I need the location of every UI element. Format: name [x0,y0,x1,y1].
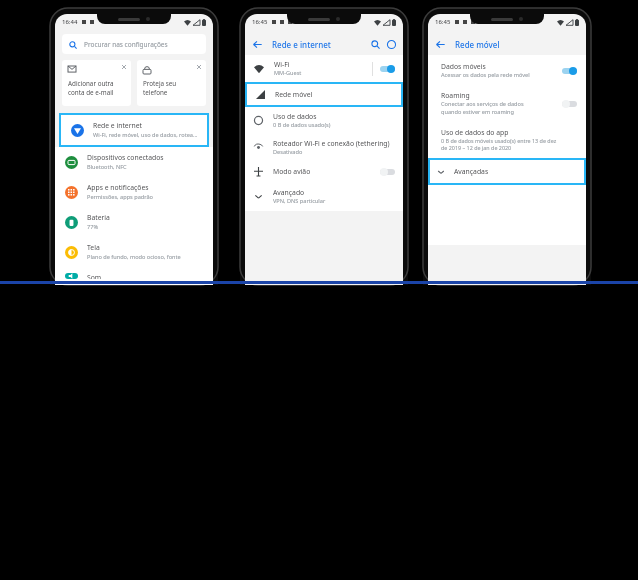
staticText: Dados móveis [441,62,486,71]
button[interactable]: Dispensar [121,64,127,70]
staticText: Plano de fundo, modo ocioso, fonte [87,253,181,261]
button[interactable]: Dispositivos conectados [55,147,213,177]
staticText: Rede móvel [275,90,313,99]
button[interactable]: Roteador Wi-Fi e conexão (tethering) [245,134,403,161]
staticText: Uso de dados [273,112,317,121]
staticText: Avançado [273,188,305,197]
button[interactable]: Ajuda [387,40,396,49]
button[interactable]: Proteja seu telefone [137,60,206,106]
button[interactable]: Dados móveis [428,55,586,85]
staticText: Som [87,273,102,279]
button[interactable]: Pesquisar [371,40,380,49]
staticText: Wi-Fi, rede móvel, uso de dados, roteado… [93,131,199,139]
staticText: Uso de dados do app [441,128,509,137]
button[interactable]: Rede e internet [61,115,207,145]
staticText: Proteja seu telefone [143,79,201,97]
staticText: Bateria [87,213,110,222]
staticText: Roaming [441,91,470,100]
button[interactable]: Tela [55,237,213,267]
button[interactable]: Avançado [245,182,403,211]
button[interactable]: Roaming [428,85,586,122]
button[interactable]: Rede móvel [247,84,401,105]
staticText: Adicionar outra conta de e-mail [68,79,114,97]
staticText: Dispositivos conectados [87,153,164,162]
staticText: 0 B de dados usado(s) [273,121,331,129]
button[interactable]: Wi-Fi [245,55,403,82]
staticText: MM-Guest [274,69,302,77]
staticText: 0 B de dados móveis usado(s) entre 13 de… [441,137,557,144]
staticText: Rede e internet [93,121,142,130]
staticText: quando estiver em roaming [441,108,514,116]
staticText: Modo avião [273,167,380,176]
staticText: 77% [87,223,99,231]
button[interactable]: Uso de dados do app [428,122,586,158]
staticText: Procurar nas configurações [84,40,168,49]
staticText: Rede móvel [455,39,500,50]
button[interactable]: Uso de dados [245,107,403,134]
staticText: Apps e notificações [87,183,149,192]
staticText: Permissões, apps padrão [87,193,153,201]
staticText: Wi-Fi [274,60,290,69]
button[interactable]: Modo avião [245,161,403,182]
staticText: Rede e internet [272,39,331,50]
staticText: Desativado [273,148,303,156]
staticText: Bluetooth, NFC [87,163,127,171]
button[interactable]: Adicionar outra conta de e-mail [62,60,131,106]
staticText: Avançadas [454,167,489,176]
staticText: Roteador Wi-Fi e conexão (tethering) [273,139,390,148]
button[interactable]: Apps e notificações [55,177,213,207]
button[interactable]: Dispensar [196,64,202,70]
button[interactable]: Voltar [252,39,263,50]
button[interactable]: Voltar [435,39,446,50]
button[interactable]: Avançadas [430,160,584,183]
staticText: Conectar aos serviços de dados [441,100,524,108]
button[interactable]: Bateria [55,207,213,237]
staticText: VPN, DNS particular [273,197,326,205]
staticText: de 2019 – 12 de jan de 2020 [441,144,512,151]
staticText: Tela [87,243,100,252]
staticText: Acessar os dados pela rede móvel [441,71,530,79]
staticText: 16:45 [252,18,268,26]
button[interactable]: Procurar nas configurações [62,34,206,54]
staticText: 16:45 [435,18,451,26]
staticText: 16:44 [62,18,78,26]
button[interactable]: Som [55,267,213,285]
